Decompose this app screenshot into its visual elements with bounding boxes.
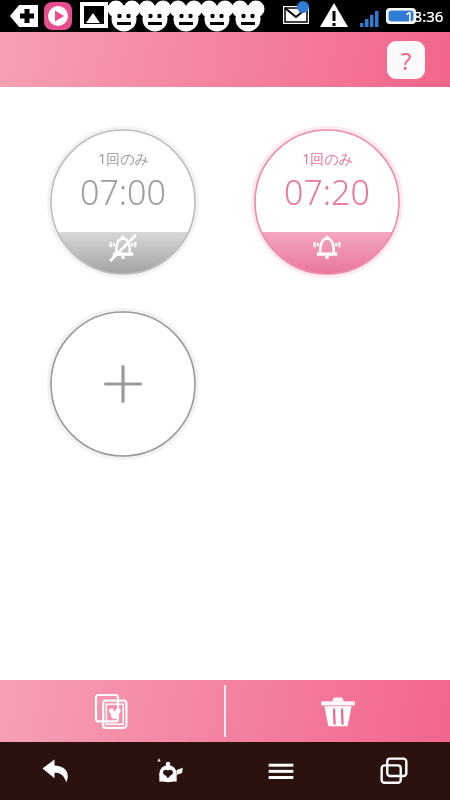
button[interactable]: Menu [224,742,337,800]
button[interactable]: Home [112,742,224,800]
staticText: 07:20 [284,169,370,215]
button[interactable]: Recent apps [337,742,450,800]
button[interactable]: 1回のみ [252,127,402,277]
staticText: 1回のみ [302,149,353,168]
button[interactable]: 1回のみ [48,127,198,277]
button[interactable]: Add alarm [48,309,198,459]
staticText: 18:36 [405,6,444,26]
button[interactable]: Back [0,742,112,800]
button[interactable]: Help [387,41,425,79]
button[interactable]: Delete [226,680,450,742]
staticText: 1回のみ [98,149,149,168]
staticText: 07:00 [80,169,166,215]
button[interactable]: Cards [0,680,224,742]
staticText: ? [401,44,412,77]
